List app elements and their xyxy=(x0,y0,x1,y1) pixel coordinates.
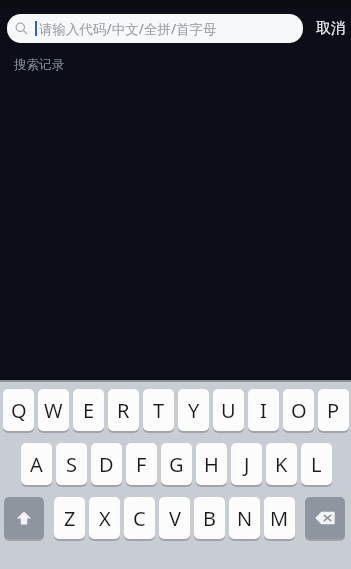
staticText: E xyxy=(83,397,95,424)
button[interactable]: 取消 xyxy=(312,7,350,50)
button[interactable]: N xyxy=(229,497,260,539)
button[interactable]: F xyxy=(126,443,157,485)
button[interactable]: B xyxy=(194,497,225,539)
button[interactable]: U xyxy=(213,389,244,431)
staticText: Z xyxy=(64,505,76,532)
staticText: V xyxy=(169,505,181,532)
button[interactable]: Shift xyxy=(4,497,44,539)
staticText: C xyxy=(133,505,146,532)
button[interactable]: W xyxy=(38,389,69,431)
staticText: Q xyxy=(11,397,27,424)
staticText: U xyxy=(221,397,236,424)
button[interactable]: A xyxy=(21,443,52,485)
button[interactable]: C xyxy=(124,497,155,539)
button[interactable]: I xyxy=(248,389,279,431)
staticText: 请输入代码/中文/全拼/首字母 xyxy=(39,20,217,38)
staticText: D xyxy=(99,451,114,478)
button[interactable]: Z xyxy=(54,497,85,539)
button[interactable]: K xyxy=(266,443,297,485)
staticText: O xyxy=(291,397,307,424)
button[interactable]: G xyxy=(161,443,192,485)
staticText: G xyxy=(169,451,184,478)
button[interactable]: P xyxy=(318,389,349,431)
button[interactable]: H xyxy=(196,443,227,485)
staticText: T xyxy=(153,397,165,424)
button[interactable]: D xyxy=(91,443,122,485)
button[interactable]: R xyxy=(108,389,139,431)
button[interactable]: T xyxy=(143,389,174,431)
staticText: S xyxy=(66,451,77,478)
staticText: 搜索记录 xyxy=(14,57,64,73)
staticText: R xyxy=(117,397,130,424)
staticText: J xyxy=(244,451,250,478)
button[interactable]: O xyxy=(283,389,314,431)
staticText: M xyxy=(270,505,289,532)
staticText: I xyxy=(260,397,267,424)
staticText: K xyxy=(275,451,288,478)
button[interactable]: Backspace xyxy=(305,497,345,539)
button[interactable]: Q xyxy=(3,389,34,431)
staticText: A xyxy=(30,451,43,478)
staticText: W xyxy=(44,397,63,424)
staticText: N xyxy=(237,505,253,532)
button[interactable]: V xyxy=(159,497,190,539)
button[interactable]: Y xyxy=(178,389,209,431)
staticText: Y xyxy=(188,397,200,424)
staticText: X xyxy=(99,505,111,532)
button[interactable]: S xyxy=(56,443,87,485)
button[interactable]: Search xyxy=(7,14,303,43)
staticText: H xyxy=(204,451,219,478)
staticText: F xyxy=(136,451,147,478)
other: Search xyxy=(15,22,28,35)
button[interactable]: X xyxy=(89,497,120,539)
button[interactable]: L xyxy=(301,443,332,485)
staticText: B xyxy=(203,505,216,532)
button[interactable]: M xyxy=(264,497,295,539)
staticText: L xyxy=(311,451,322,478)
staticText: P xyxy=(327,397,340,424)
button[interactable]: J xyxy=(231,443,262,485)
staticText: 取消 xyxy=(316,19,346,38)
button[interactable]: E xyxy=(73,389,104,431)
